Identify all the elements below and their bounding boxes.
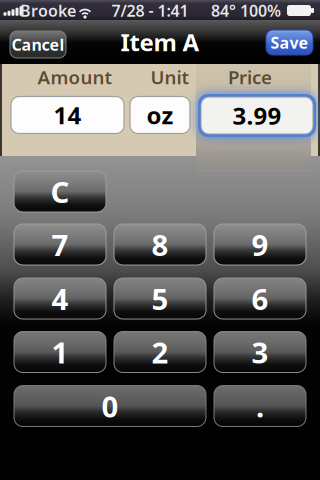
staticText: 84° 100%	[211, 0, 281, 21]
staticText: 3.99	[232, 100, 281, 131]
staticText: 5	[151, 279, 168, 318]
button[interactable]: oz	[130, 96, 190, 133]
button[interactable]: 6	[214, 278, 306, 319]
button[interactable]: 5	[114, 278, 206, 319]
button[interactable]: 14	[11, 96, 124, 133]
staticText: .	[256, 386, 264, 425]
staticText: 1	[51, 332, 68, 371]
button[interactable]: 7	[14, 224, 106, 265]
button[interactable]: 9	[214, 224, 306, 265]
staticText: Unit	[150, 65, 189, 89]
staticText: 6	[251, 279, 268, 318]
staticText: 4	[51, 279, 68, 318]
button[interactable]: 3.99	[197, 93, 317, 138]
button[interactable]: 2	[114, 331, 206, 372]
staticText: Item A	[120, 26, 199, 58]
button[interactable]: .	[214, 385, 306, 426]
staticText: 0	[101, 386, 118, 425]
staticText: Price	[228, 65, 272, 89]
staticText: oz	[146, 99, 173, 131]
button[interactable]: Save	[266, 30, 313, 55]
staticText: 14	[53, 99, 81, 131]
button[interactable]: 0	[14, 385, 206, 426]
staticText: C	[50, 172, 69, 211]
staticText: Save	[270, 32, 308, 53]
staticText: 7/28 - 1:41	[111, 0, 188, 21]
staticText: Cancel	[11, 34, 64, 55]
staticText: 7	[51, 225, 68, 264]
button[interactable]: 3	[214, 331, 306, 372]
button[interactable]: 1	[14, 331, 106, 372]
staticText: 3	[251, 332, 268, 371]
staticText: Amount	[37, 65, 112, 89]
button[interactable]: 8	[114, 224, 206, 265]
staticText: 9	[251, 225, 268, 264]
button[interactable]: Cancel	[10, 31, 66, 58]
staticText: 2	[151, 332, 168, 371]
button[interactable]: 4	[14, 278, 106, 319]
button[interactable]: C	[14, 171, 106, 212]
staticText: 8	[151, 225, 168, 264]
staticText: Brooke	[20, 0, 76, 21]
